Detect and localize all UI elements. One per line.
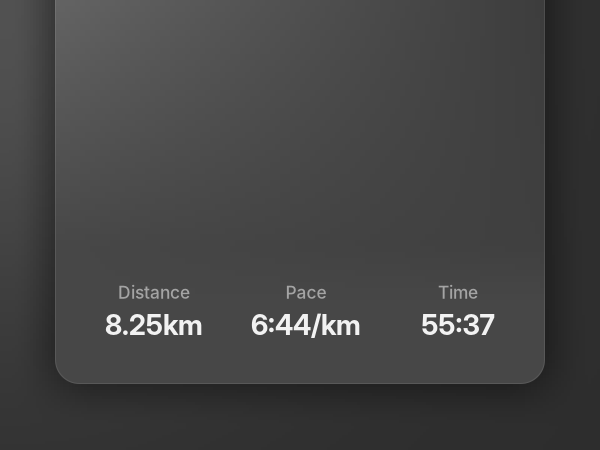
staticText: Distance xyxy=(118,282,190,303)
staticText: Pace xyxy=(285,282,326,303)
staticText: 6:44/km xyxy=(251,308,361,342)
staticText: 55:37 xyxy=(421,308,494,342)
staticText: Time xyxy=(438,282,478,303)
staticText: 8.25km xyxy=(105,308,203,342)
